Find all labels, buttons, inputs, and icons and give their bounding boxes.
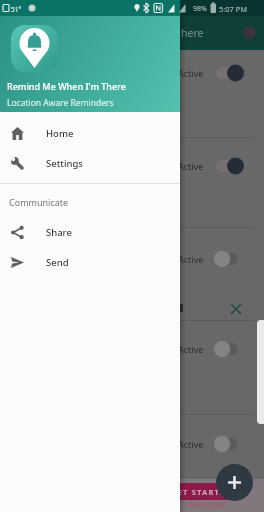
staticText: 5:07 PM	[219, 4, 248, 14]
button[interactable]: Send	[0, 247, 180, 277]
staticText: Communicate	[9, 196, 69, 208]
button[interactable]	[208, 339, 248, 359]
staticText: Home	[46, 127, 74, 140]
staticText: Settings	[46, 157, 83, 170]
staticText: Active	[178, 67, 204, 79]
button[interactable]	[208, 434, 248, 454]
button[interactable]: Share	[0, 217, 180, 247]
staticText: here	[181, 26, 204, 40]
staticText: 98%	[193, 4, 207, 14]
staticText: shoedazzle°	[186, 500, 227, 510]
button[interactable]	[208, 249, 248, 269]
button[interactable]: Settings	[0, 148, 180, 178]
button[interactable]	[216, 464, 253, 501]
staticText: Active	[178, 438, 204, 450]
staticText: Active	[178, 160, 204, 172]
staticText: 51°	[11, 5, 22, 14]
staticText: Remind Me When I'm There	[7, 80, 126, 92]
button[interactable]	[208, 63, 248, 83]
staticText: Share	[46, 226, 72, 239]
button[interactable]: Home	[0, 118, 180, 148]
staticText: Active	[178, 253, 204, 265]
button[interactable]	[243, 26, 256, 39]
staticText: Send	[46, 256, 69, 269]
staticText: Location Aware Reminders	[7, 97, 114, 109]
staticText: Active	[178, 343, 204, 355]
staticText: GET STARTED	[171, 487, 233, 497]
button[interactable]: GET STARTED	[140, 483, 232, 500]
button[interactable]	[208, 156, 248, 176]
